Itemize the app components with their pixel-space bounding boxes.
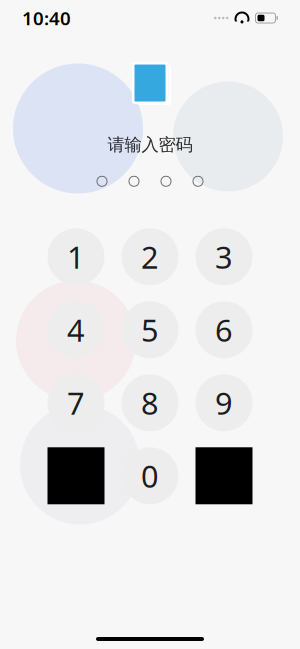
button[interactable]: 3 [195,228,252,285]
staticText: 9 [215,382,233,423]
staticText: 0 [141,455,159,496]
staticText: 请输入密码 [107,134,192,155]
staticText: 1 [67,236,85,277]
button[interactable]: 4 [47,301,104,358]
staticText: 7 [67,382,85,423]
button[interactable]: 7 [47,374,104,431]
staticText: 6 [215,309,233,350]
staticText: 4 [67,309,85,350]
staticText: 10:40 [22,6,71,30]
button[interactable]: 5 [121,301,178,358]
staticText: 3 [215,236,233,277]
staticText: 5 [141,309,159,350]
button[interactable]: 2 [121,228,178,285]
button[interactable]: 9 [195,374,252,431]
staticText: 2 [141,236,159,277]
staticText: 8 [141,382,159,423]
button[interactable]: 1 [47,228,104,285]
button[interactable]: 6 [195,301,252,358]
button[interactable]: 8 [121,374,178,431]
button[interactable]: 0 [121,447,178,504]
